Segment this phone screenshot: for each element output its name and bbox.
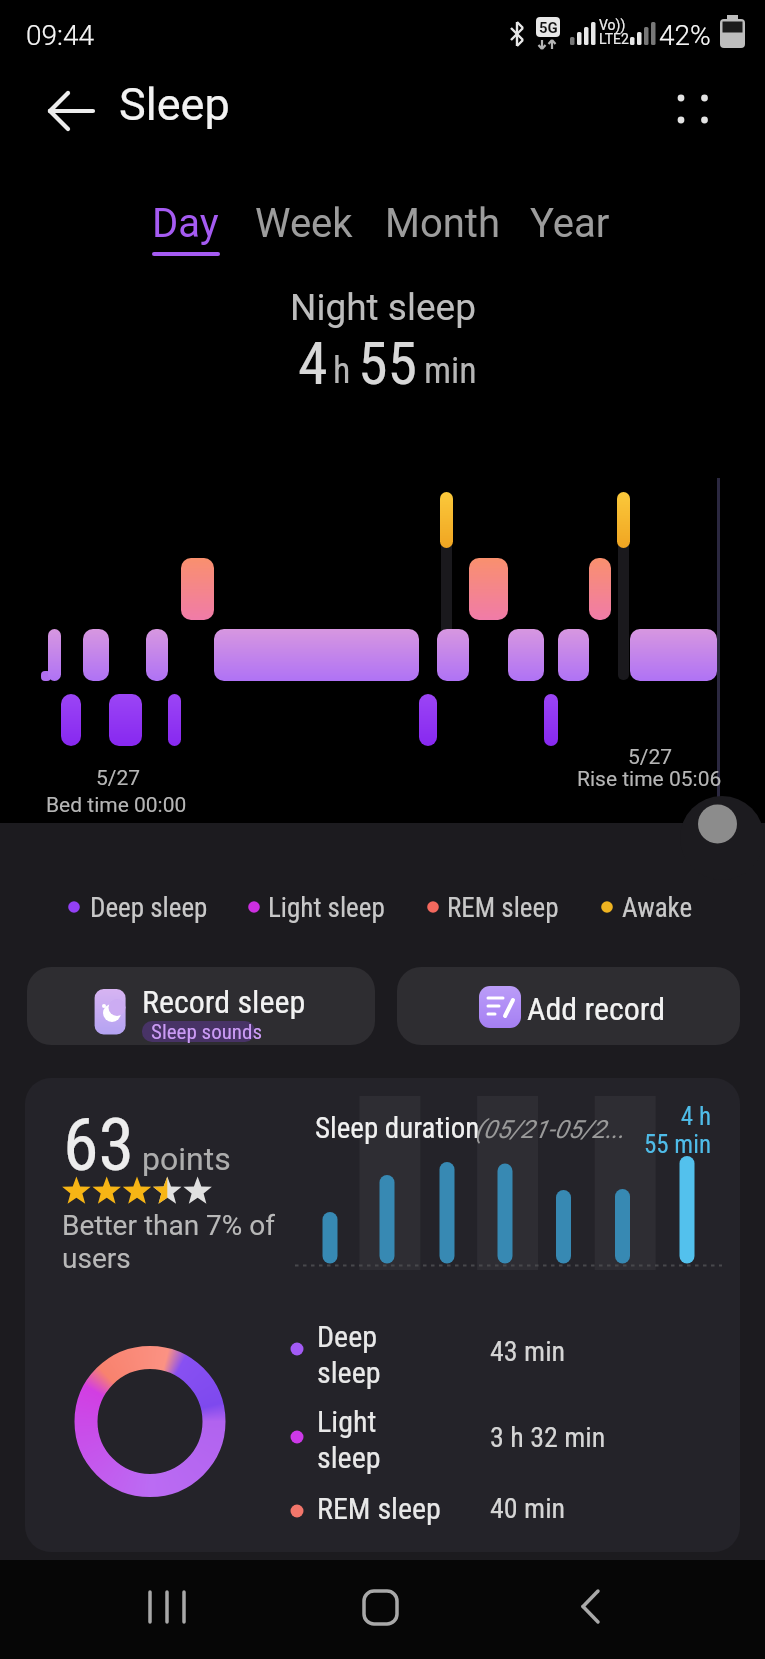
button[interactable] [125,1575,210,1645]
button[interactable]: Week [240,190,370,262]
staticText: 55 min [626,1130,711,1159]
staticText: LTE2 [599,31,629,47]
button[interactable]: Add record [397,967,740,1045]
staticText: 42% [659,19,711,52]
staticText: Month [385,200,500,247]
staticText: 4 h [626,1102,711,1131]
staticText: Add record [527,990,666,1028]
button[interactable]: Record sleep [27,967,375,1045]
staticText: Day [152,200,219,247]
staticText: sleep [317,1440,381,1475]
staticText: points [142,1140,231,1178]
staticText: h [333,350,351,392]
staticText: users [62,1242,131,1275]
staticText: 5/27 [628,745,673,770]
staticText: Week [255,200,353,247]
button[interactable] [664,81,722,139]
staticText: Deep sleep [90,892,208,924]
staticText: sleep [317,1355,381,1390]
staticText: 63 [63,1103,135,1187]
button[interactable] [40,86,96,136]
staticText: 5G [539,19,558,37]
staticText: Awake [622,892,693,924]
button[interactable]: Day [130,190,240,262]
staticText: Rise time 05:06 [577,767,722,792]
staticText: 40 min [490,1492,566,1525]
button[interactable] [550,1575,635,1645]
staticText: Sleep [119,78,230,131]
staticText: Sleep duration [315,1111,480,1145]
staticText: min [424,350,477,392]
button[interactable]: 63 [25,1078,740,1552]
staticText: 3 h 32 min [490,1421,606,1454]
staticText: 5/27 [96,766,141,791]
button[interactable] [338,1575,423,1645]
staticText: 43 min [490,1335,566,1368]
button[interactable]: Year [515,190,630,262]
staticText: 09:44 [26,19,95,52]
staticText: Deep [317,1319,378,1354]
staticText: REM sleep [447,892,559,924]
staticText: 55 [358,328,418,398]
staticText: Night sleep [290,286,476,329]
staticText: Sleep sounds [151,1020,263,1045]
staticText: REM sleep [317,1491,441,1526]
staticText: 4 [298,328,328,398]
staticText: Better than 7% of [62,1209,276,1242]
staticText: Light [317,1404,377,1439]
staticText: Light sleep [268,892,385,924]
staticText: Bed time 00:00 [46,793,187,818]
button[interactable]: Month [370,190,515,262]
staticText: Record sleep [142,983,306,1021]
staticText: (05/21-05/2... [475,1115,625,1144]
staticText: Vo)) [599,17,626,33]
staticText: Year [530,200,610,247]
